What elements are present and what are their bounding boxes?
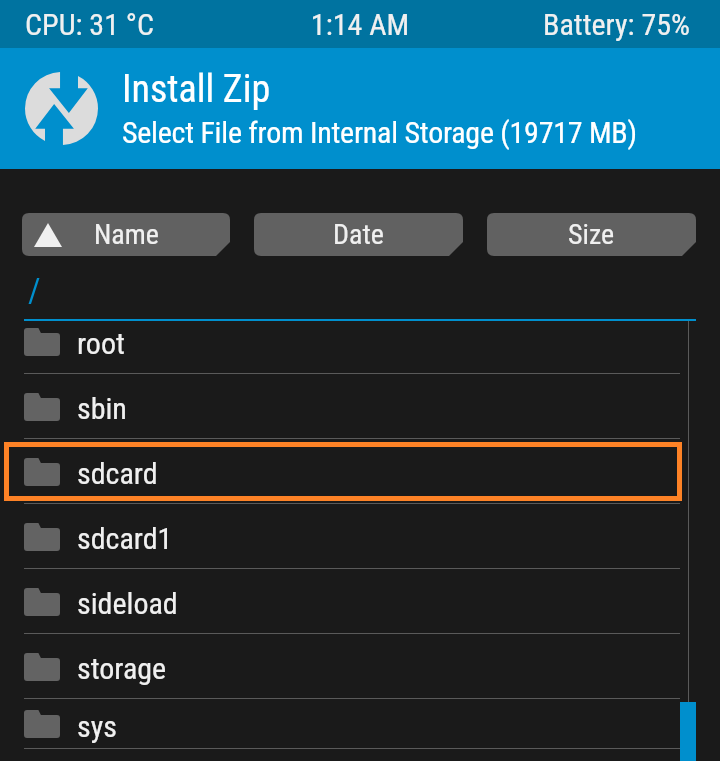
button[interactable]: Size xyxy=(487,213,696,256)
staticText: sdcard xyxy=(77,456,158,491)
staticText: CPU: 31 °C xyxy=(25,7,240,42)
staticText: Install Zip xyxy=(122,67,271,112)
other: Sort ascending xyxy=(34,223,62,247)
button[interactable]: sideload xyxy=(0,569,720,634)
button[interactable]: storage xyxy=(0,634,720,699)
button[interactable]: root xyxy=(0,321,720,374)
staticText: sdcard1 xyxy=(77,521,173,556)
staticText: Battery: 75% xyxy=(480,7,690,42)
staticText: / xyxy=(28,270,41,310)
staticText: root xyxy=(77,326,125,361)
staticText: storage xyxy=(77,651,167,686)
staticText: Size xyxy=(568,218,615,251)
button[interactable]: sys xyxy=(0,699,720,749)
staticText: Select File from Internal Storage (19717… xyxy=(122,115,637,150)
staticText: sbin xyxy=(77,391,127,426)
button[interactable]: sbin xyxy=(0,374,720,439)
button[interactable]: sdcard xyxy=(0,439,720,504)
button[interactable]: sdcard1 xyxy=(0,504,720,569)
staticText: 1:14 AM xyxy=(240,7,480,42)
staticText: sys xyxy=(77,709,117,744)
staticText: Name xyxy=(94,218,159,251)
button[interactable]: Name xyxy=(22,213,230,256)
staticText: Date xyxy=(333,218,384,251)
button[interactable]: Date xyxy=(254,213,463,256)
staticText: sideload xyxy=(77,586,178,621)
